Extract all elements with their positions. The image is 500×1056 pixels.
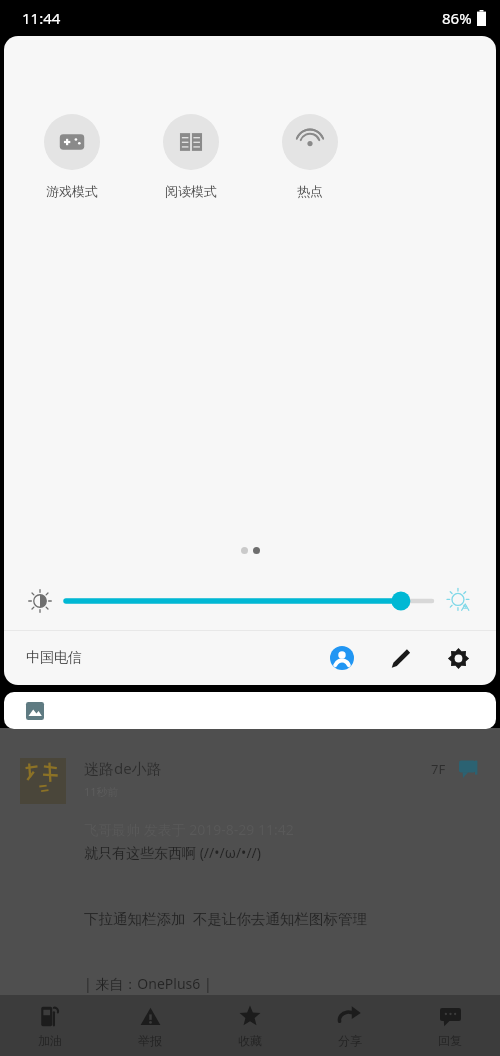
staticText: 回复 (438, 1033, 462, 1048)
staticText: 11秒前 (84, 784, 119, 799)
button[interactable]: 游戏模式 (12, 112, 131, 201)
staticText: 中国电信 (26, 649, 82, 667)
staticText: 举报 (138, 1033, 162, 1048)
staticText: 86% (442, 8, 472, 28)
staticText: | 来自：OnePlus6 | (84, 974, 212, 993)
staticText: 收藏 (238, 1033, 262, 1048)
staticText: 游戏模式 (46, 183, 98, 199)
button[interactable]: User (322, 638, 362, 678)
staticText: 加油 (38, 1033, 62, 1048)
button[interactable]: Auto brightness (436, 578, 482, 624)
button[interactable]: 举报 (100, 995, 200, 1056)
button[interactable]: 收藏 (200, 995, 300, 1056)
staticText: 阅读模式 (165, 183, 217, 199)
button[interactable]: Settings (438, 638, 478, 678)
button[interactable] (4, 692, 496, 729)
staticText: 分享 (338, 1033, 362, 1048)
button[interactable] (66, 581, 432, 621)
staticText: 就只有这些东西啊 (//•/ω/•//) (84, 843, 262, 862)
button[interactable]: 加油 (0, 995, 100, 1056)
button[interactable]: Reply (458, 758, 480, 780)
staticText: 7F (431, 760, 446, 778)
button[interactable]: 热点 (250, 112, 369, 201)
staticText: 下拉通知栏添加 不是让你去通知栏图标管理 (84, 908, 368, 928)
staticText: 11:44 (22, 8, 61, 28)
button[interactable]: Brightness (18, 579, 62, 623)
button[interactable]: 阅读模式 (131, 112, 250, 201)
staticText: 迷路de小路 (84, 758, 162, 778)
button[interactable]: Edit (380, 638, 420, 678)
button[interactable]: 回复 (400, 995, 500, 1056)
button[interactable]: 分享 (300, 995, 400, 1056)
staticText: 热点 (297, 183, 323, 199)
